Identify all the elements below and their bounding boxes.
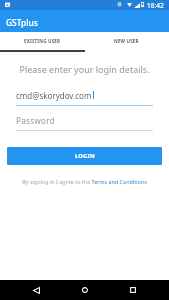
staticText: 18:42 [147,1,164,10]
staticText: EXISTING USER [24,38,61,44]
staticText: LOGIN [75,152,95,160]
staticText: NEW USER [114,38,139,44]
staticText: cmd@skorydov.com [16,90,92,101]
button[interactable]: Back [28,280,45,300]
button[interactable]: By signing in I agree to the Terms and C… [0,178,169,185]
staticText: Please enter your login details. [0,63,169,75]
staticText: Password [16,115,55,126]
button[interactable]: LOGIN [7,147,162,165]
button[interactable]: Home [76,280,93,300]
button[interactable]: NEW USER [84,32,169,52]
button[interactable]: EXISTING USER [0,32,84,52]
staticText: GSTplus [6,17,38,28]
button[interactable]: Recent apps [124,280,141,300]
